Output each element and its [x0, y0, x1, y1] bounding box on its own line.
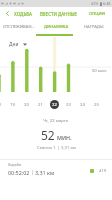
button[interactable]: 24	[78, 100, 87, 109]
staticText: 52	[41, 127, 55, 143]
staticText: 25	[94, 102, 99, 108]
staticText: НАГРАДЫ	[84, 24, 104, 30]
staticText: ОПЦИИ	[89, 11, 105, 17]
staticText: ВВЕСТИ ДАННЫЕ	[40, 11, 77, 17]
button[interactable]: НАГРАДЫ	[75, 20, 112, 36]
button[interactable]: ОТСЛЕЖИВАН...	[0, 20, 38, 36]
button[interactable]: 21	[36, 100, 45, 109]
staticText: 6:48	[103, 1, 111, 6]
staticText: 20	[24, 102, 29, 108]
button[interactable]: ХОДЬБА	[13, 8, 33, 20]
staticText: Дни	[9, 41, 19, 48]
staticText: мин.	[57, 133, 72, 142]
button[interactable]: 20	[22, 100, 31, 109]
button[interactable]: 25	[92, 100, 101, 109]
staticText: 18	[0, 102, 1, 108]
staticText: Сеансы 1	[37, 145, 56, 151]
staticText: 3,31 км	[61, 145, 76, 151]
staticText: ОТСЛЕЖИВАН...	[3, 24, 35, 30]
button[interactable]: 22	[50, 100, 59, 109]
staticText: 24	[80, 102, 85, 108]
button[interactable]: Back	[2, 8, 13, 19]
button[interactable]: Дни	[8, 39, 28, 50]
staticText: ХОДЬБА	[14, 11, 32, 17]
staticText: 50 мин.	[92, 68, 108, 74]
button[interactable]: 18	[0, 100, 3, 109]
staticText: 3,31 км	[35, 169, 55, 176]
staticText: 22	[52, 102, 57, 108]
staticText: 23	[66, 102, 71, 108]
button[interactable]: ВВЕСТИ ДАННЫЕ	[39, 8, 78, 20]
staticText: 21	[38, 102, 43, 108]
staticText: Ходьба	[8, 162, 22, 167]
staticText: Чт, 22 марта	[43, 118, 69, 124]
staticText: 419	[99, 168, 107, 174]
button[interactable]: 23	[64, 100, 73, 109]
button[interactable]: ДИНАМИКА	[38, 20, 75, 36]
button[interactable]: 19	[8, 100, 17, 109]
button[interactable]: Ходьба	[0, 159, 112, 183]
staticText: ДИНАМИКА	[44, 24, 69, 30]
staticText: 42%	[91, 1, 99, 6]
staticText: 19	[10, 102, 15, 108]
staticText: 00:52:02	[8, 169, 30, 176]
button[interactable]: ОПЦИИ	[88, 8, 106, 20]
